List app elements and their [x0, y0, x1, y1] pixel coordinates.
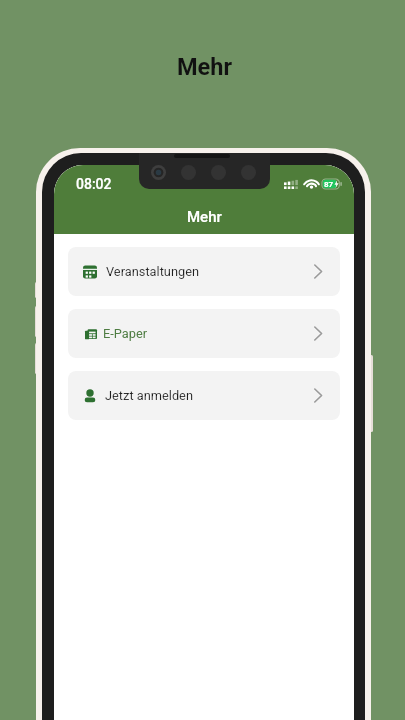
button[interactable]: Veranstaltungen — [68, 247, 340, 296]
staticText: Mehr — [177, 53, 233, 81]
staticText: 08:02 — [76, 176, 112, 192]
button[interactable]: Jetzt anmelden — [68, 371, 340, 420]
staticText: Veranstaltungen — [106, 264, 199, 279]
button[interactable]: E-Paper — [68, 309, 340, 358]
staticText: E-Paper — [103, 326, 148, 341]
staticText: 87 — [324, 180, 334, 189]
staticText: Jetzt anmelden — [105, 388, 193, 403]
staticText: Mehr — [187, 208, 222, 225]
